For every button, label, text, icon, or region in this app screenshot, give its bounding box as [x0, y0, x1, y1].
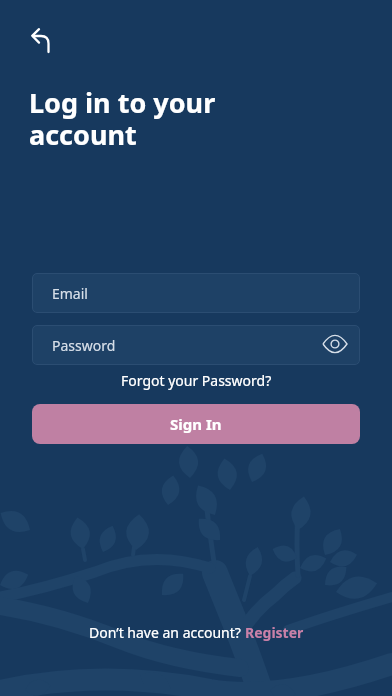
staticText: Sign In	[170, 414, 222, 434]
staticText: Don’t have an account?	[89, 623, 245, 642]
staticText: Register	[245, 623, 304, 642]
staticText: Email	[52, 284, 88, 303]
staticText: Forgot your Password?	[121, 371, 272, 390]
staticText: Password	[52, 336, 116, 355]
staticText: Log in to your account	[29, 84, 216, 153]
